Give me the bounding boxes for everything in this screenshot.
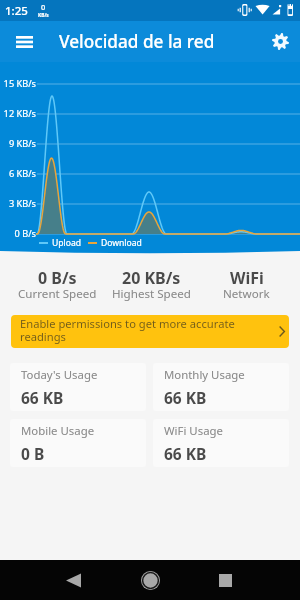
staticText: Highest Speed: [112, 286, 191, 302]
button[interactable]: Settings: [260, 21, 300, 62]
staticText: 0: [41, 2, 46, 12]
staticText: 0 B: [21, 443, 45, 464]
button[interactable]: Today's Usage: [10, 363, 146, 411]
button[interactable]: 20 KB/s: [104, 267, 199, 305]
button[interactable]: 0 B/s: [10, 267, 104, 305]
staticText: 12 KB/s: [3, 107, 36, 120]
staticText: Monthly Usage: [164, 367, 245, 383]
button[interactable]: Menu: [0, 21, 48, 62]
staticText: Current Speed: [18, 286, 97, 302]
button[interactable]: Home: [125, 560, 175, 600]
button[interactable]: Back: [48, 560, 98, 600]
staticText: 15 KB/s: [3, 77, 36, 90]
button[interactable]: WiFi: [199, 267, 294, 305]
button[interactable]: Monthly Usage: [153, 363, 289, 411]
staticText: WiFi Usage: [164, 423, 223, 439]
staticText: 9 KB/s: [8, 137, 36, 150]
staticText: 0 B/s: [14, 227, 36, 240]
staticText: Download: [101, 237, 142, 249]
staticText: Today's Usage: [21, 367, 98, 383]
button[interactable]: Mobile Usage: [10, 419, 146, 467]
staticText: Mobile Usage: [21, 423, 95, 439]
staticText: Enable permissions to get more accurate …: [20, 316, 242, 344]
staticText: 6 KB/s: [8, 167, 36, 180]
staticText: WiFi: [230, 267, 264, 289]
staticText: 20 KB/s: [122, 267, 181, 289]
staticText: Velocidad de la red: [59, 30, 215, 53]
staticText: Upload: [52, 237, 82, 249]
staticText: 66 KB: [164, 443, 207, 464]
staticText: KB/s: [38, 12, 49, 19]
button[interactable]: Enable permissions to get more accurate …: [11, 315, 289, 348]
staticText: 3 KB/s: [8, 197, 36, 210]
button[interactable]: Recents: [200, 560, 250, 600]
staticText: 1:25: [5, 3, 28, 19]
button[interactable]: WiFi Usage: [153, 419, 289, 467]
staticText: Network: [223, 286, 270, 302]
staticText: 0 B/s: [38, 267, 77, 289]
staticText: 66 KB: [164, 387, 207, 408]
staticText: 66 KB: [21, 387, 64, 408]
